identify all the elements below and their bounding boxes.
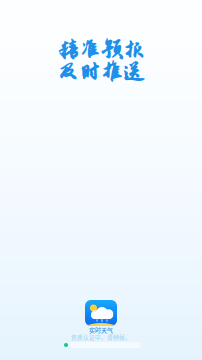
staticText: 精准预报 (57, 38, 145, 62)
staticText: 及时推送 (57, 60, 145, 84)
button[interactable]: 实时天气 (85, 300, 117, 326)
staticText: 资质认证中，请稍候。 (71, 333, 131, 341)
staticText: 实时天气 (89, 326, 113, 334)
